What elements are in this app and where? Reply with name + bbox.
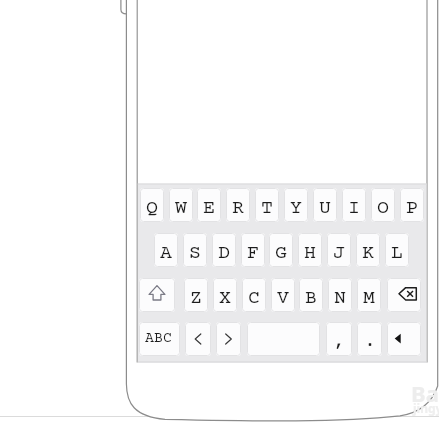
staticText: , bbox=[333, 330, 345, 352]
staticText: U bbox=[319, 197, 331, 219]
button[interactable]: E bbox=[197, 188, 221, 222]
button[interactable]: B bbox=[299, 278, 323, 312]
button[interactable]: , bbox=[326, 322, 352, 356]
button[interactable] bbox=[216, 322, 241, 356]
staticText: V bbox=[277, 287, 289, 309]
staticText: jingy bbox=[413, 400, 439, 416]
staticText: E bbox=[203, 197, 215, 219]
staticText: Y bbox=[290, 197, 302, 219]
button[interactable]: ABC bbox=[139, 322, 180, 356]
staticText: M bbox=[363, 287, 375, 309]
button[interactable]: Z bbox=[184, 278, 208, 312]
button[interactable]: I bbox=[342, 188, 366, 222]
staticText: W bbox=[175, 197, 187, 219]
button[interactable] bbox=[185, 322, 211, 356]
button[interactable]: Q bbox=[140, 188, 164, 222]
staticText: I bbox=[348, 197, 360, 219]
button[interactable]: O bbox=[371, 188, 395, 222]
button[interactable]: N bbox=[328, 278, 352, 312]
button[interactable]: . bbox=[357, 322, 382, 356]
button[interactable]: R bbox=[226, 188, 250, 222]
staticText: D bbox=[218, 242, 230, 264]
button[interactable]: U bbox=[313, 188, 337, 222]
button[interactable]: G bbox=[269, 233, 293, 267]
button[interactable] bbox=[247, 322, 320, 356]
button[interactable]: K bbox=[356, 233, 380, 267]
button[interactable]: J bbox=[327, 233, 351, 267]
staticText: A bbox=[160, 242, 172, 264]
staticText: X bbox=[219, 287, 231, 309]
button[interactable]: H bbox=[298, 233, 322, 267]
staticText: J bbox=[333, 242, 345, 264]
button[interactable]: X bbox=[213, 278, 237, 312]
button[interactable]: A bbox=[154, 233, 178, 267]
staticText: S bbox=[189, 242, 201, 264]
staticText: . bbox=[364, 330, 376, 352]
button[interactable]: M bbox=[357, 278, 381, 312]
staticText: G bbox=[275, 242, 287, 264]
staticText: B bbox=[305, 287, 317, 309]
button[interactable]: V bbox=[271, 278, 295, 312]
staticText: N bbox=[334, 287, 346, 309]
staticText: O bbox=[377, 197, 389, 219]
staticText: K bbox=[362, 242, 374, 264]
staticText: ABC bbox=[145, 330, 172, 347]
button[interactable] bbox=[387, 278, 421, 312]
staticText: C bbox=[248, 287, 260, 309]
staticText: T bbox=[261, 197, 273, 219]
staticText: H bbox=[304, 242, 316, 264]
button[interactable] bbox=[139, 278, 175, 312]
button[interactable]: S bbox=[183, 233, 207, 267]
button[interactable]: F bbox=[241, 233, 265, 267]
staticText: Ba bbox=[411, 378, 439, 408]
staticText: R bbox=[232, 197, 244, 219]
button[interactable]: L bbox=[385, 233, 409, 267]
staticText: Q bbox=[146, 197, 158, 219]
staticText: L bbox=[391, 242, 403, 264]
button[interactable]: T bbox=[255, 188, 279, 222]
staticText: P bbox=[406, 197, 418, 219]
staticText: Z bbox=[190, 287, 202, 309]
button[interactable] bbox=[387, 322, 421, 356]
button[interactable]: D bbox=[212, 233, 236, 267]
button[interactable]: C bbox=[242, 278, 266, 312]
button[interactable]: Y bbox=[284, 188, 308, 222]
button[interactable]: W bbox=[169, 188, 193, 222]
staticText: F bbox=[247, 242, 259, 264]
button[interactable]: P bbox=[400, 188, 424, 222]
